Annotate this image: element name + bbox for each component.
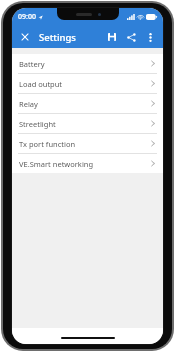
staticText: VE.Smart networking: [19, 159, 151, 169]
button[interactable]: Save: [104, 29, 120, 45]
button[interactable]: Streetlight: [12, 114, 163, 133]
staticText: Relay: [19, 99, 151, 109]
staticText: Tx port function: [19, 139, 151, 149]
button[interactable]: Share: [123, 29, 139, 45]
button[interactable]: Relay: [12, 94, 163, 113]
staticText: Settings: [39, 31, 76, 44]
staticText: 09:00: [18, 12, 36, 22]
button[interactable]: VE.Smart networking: [12, 154, 163, 173]
button[interactable]: Tx port function: [12, 134, 163, 153]
button[interactable]: Load output: [12, 74, 163, 93]
staticText: Battery: [19, 59, 151, 69]
staticText: Streetlight: [19, 119, 151, 129]
button[interactable]: Battery: [12, 54, 163, 73]
staticText: Load output: [19, 79, 151, 89]
button[interactable]: More options: [142, 29, 158, 45]
button[interactable]: Close: [17, 29, 33, 45]
